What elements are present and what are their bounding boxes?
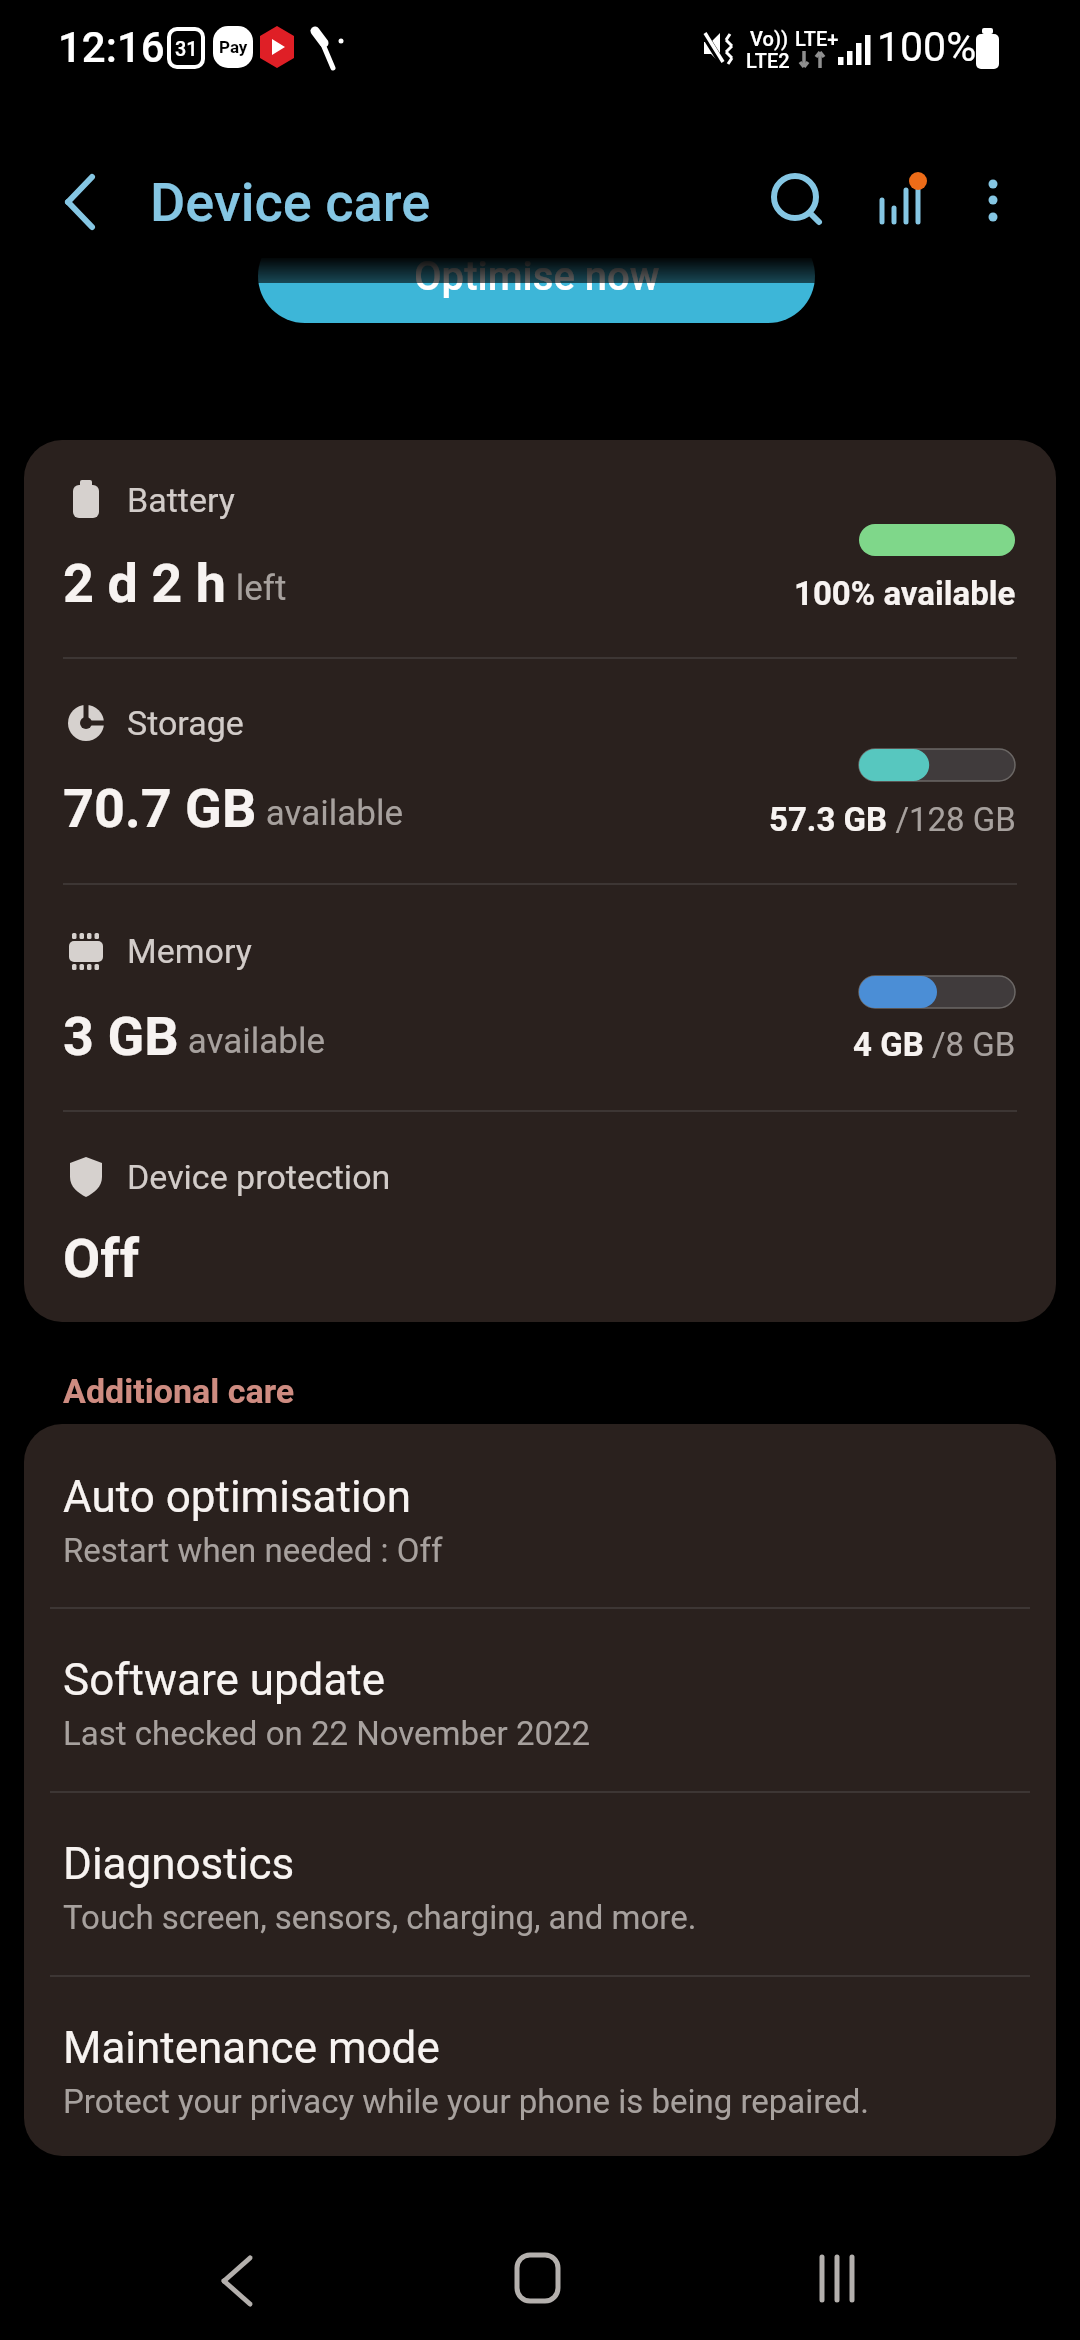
- staticText: 3 GB: [63, 1005, 179, 1068]
- staticText: Additional care: [63, 1371, 295, 1411]
- staticText: Diagnostics: [63, 1838, 295, 1890]
- staticText: Auto optimisation: [63, 1471, 412, 1523]
- staticText: Device protection: [127, 1157, 391, 1197]
- staticText: LTE+: [795, 27, 839, 50]
- staticText: 70.7 GB: [63, 777, 257, 840]
- staticText: 57.3 GB /128 GB: [769, 800, 1016, 839]
- button[interactable]: [40, 172, 120, 232]
- button[interactable]: Software update: [24, 1607, 1056, 1790]
- staticText: Software update: [63, 1654, 386, 1706]
- staticText: Memory: [127, 931, 252, 971]
- staticText: Vo)): [750, 27, 789, 50]
- staticText: Off: [63, 1227, 139, 1290]
- button[interactable]: Maintenance mode: [24, 1975, 1056, 2156]
- button[interactable]: Optimise now: [258, 229, 815, 323]
- staticText: 12:16: [58, 23, 165, 72]
- staticText: LTE2: [746, 49, 790, 72]
- button[interactable]: [755, 160, 839, 244]
- button[interactable]: [780, 2238, 890, 2328]
- staticText: Battery: [127, 480, 235, 520]
- button[interactable]: [180, 2238, 290, 2328]
- staticText: available: [257, 793, 403, 834]
- staticText: Last checked on 22 November 2022: [63, 1714, 591, 1753]
- staticText: 100%: [877, 23, 977, 71]
- staticText: 31: [175, 37, 198, 60]
- staticText: Storage: [127, 703, 244, 743]
- button[interactable]: [482, 2238, 592, 2328]
- button[interactable]: [860, 160, 944, 244]
- staticText: 100% available: [794, 574, 1016, 613]
- staticText: 2 d 2 h: [63, 552, 227, 615]
- staticText: left: [227, 568, 287, 609]
- staticText: Protect your privacy while your phone is…: [63, 2082, 870, 2121]
- button[interactable]: Auto optimisation: [24, 1424, 1056, 1607]
- button[interactable]: Diagnostics: [24, 1791, 1056, 1974]
- staticText: Pay: [219, 37, 248, 57]
- staticText: Touch screen, sensors, charging, and mor…: [63, 1898, 697, 1937]
- staticText: available: [179, 1021, 325, 1062]
- staticText: Device care: [150, 171, 431, 234]
- staticText: Optimise now: [414, 253, 660, 300]
- button[interactable]: [960, 160, 1028, 244]
- staticText: Maintenance mode: [63, 2022, 440, 2074]
- staticText: Restart when needed : Off: [63, 1531, 443, 1570]
- staticText: 4 GB /8 GB: [853, 1025, 1016, 1064]
